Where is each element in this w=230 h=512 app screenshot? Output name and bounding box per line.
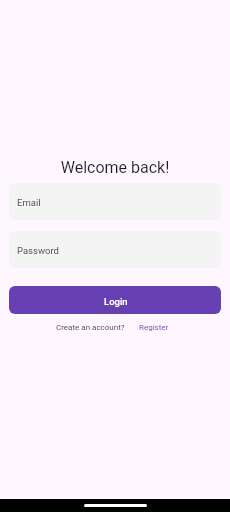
staticText: Register [139,323,169,332]
staticText: Create an account? [56,323,125,332]
button[interactable]: Password [9,231,221,268]
button[interactable]: Register [139,323,169,332]
staticText: Email [17,197,41,208]
staticText: Password [17,245,59,256]
other: Home gesture handle [84,504,147,507]
button[interactable]: Email [9,183,221,220]
staticText: Login [104,296,128,307]
staticText: Welcome back! [0,158,230,177]
button[interactable]: Login [9,286,221,314]
